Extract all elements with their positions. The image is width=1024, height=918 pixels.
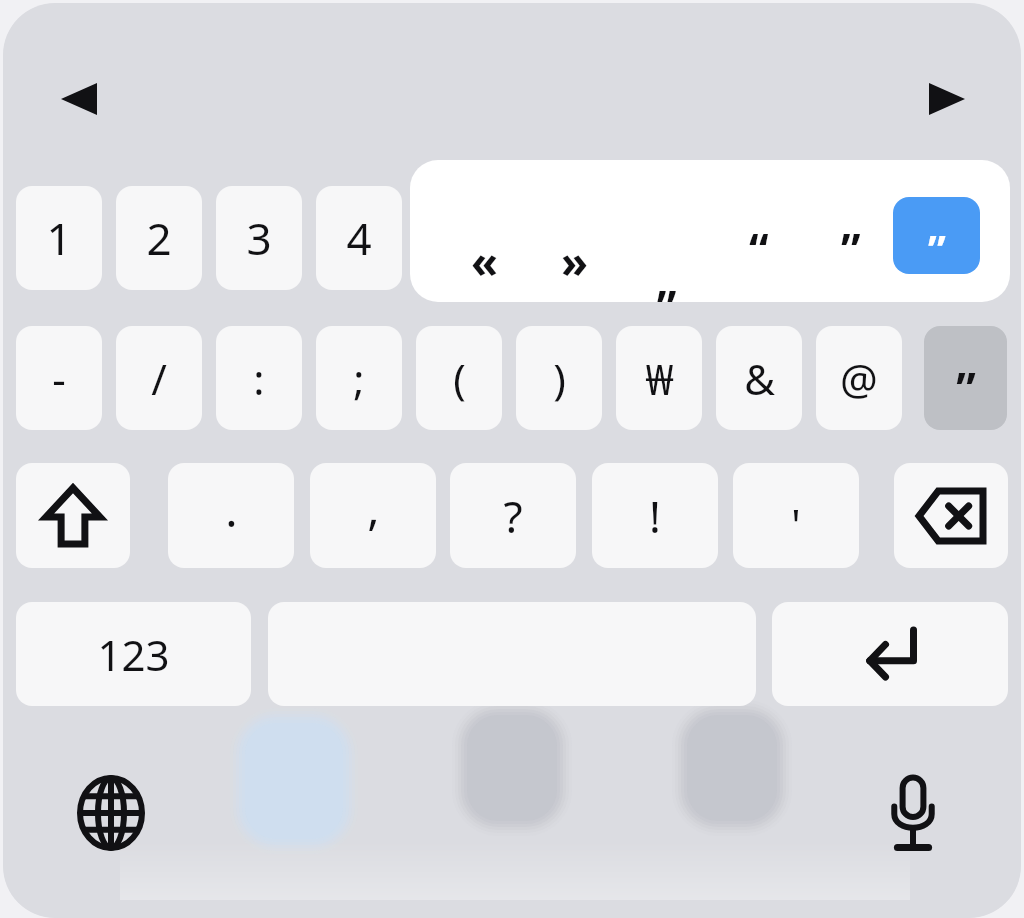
staticText: : bbox=[253, 350, 265, 407]
button[interactable]: ' bbox=[733, 463, 859, 568]
button[interactable]: Change keyboard language bbox=[74, 776, 148, 850]
staticText: 123 bbox=[97, 626, 170, 683]
button[interactable]: ? bbox=[450, 463, 576, 568]
button[interactable]: 4 bbox=[316, 186, 402, 290]
button[interactable]: « bbox=[452, 196, 518, 274]
button[interactable]: ₩ bbox=[616, 326, 702, 430]
button[interactable]: / bbox=[116, 326, 202, 430]
button[interactable]: , bbox=[310, 463, 436, 568]
staticText: ; bbox=[353, 350, 365, 407]
staticText: ₩ bbox=[645, 350, 674, 407]
button[interactable]: Previous bbox=[44, 70, 114, 128]
button[interactable]: ” bbox=[893, 197, 980, 274]
staticText: “ bbox=[749, 219, 769, 279]
staticText: 3 bbox=[246, 208, 272, 268]
button[interactable]: Backspace bbox=[894, 463, 1008, 568]
button[interactable]: Voice input bbox=[876, 772, 950, 856]
button[interactable]: » bbox=[542, 196, 608, 274]
staticText: / bbox=[151, 350, 167, 407]
staticText: ” bbox=[841, 219, 861, 279]
button[interactable]: 123 bbox=[16, 602, 251, 706]
staticText: ( bbox=[453, 350, 466, 407]
staticText: « bbox=[471, 231, 499, 291]
button[interactable]: ” bbox=[818, 196, 884, 274]
staticText: - bbox=[52, 350, 66, 407]
button[interactable]: Next bbox=[912, 70, 982, 128]
staticText: 1 bbox=[46, 208, 72, 268]
staticText: & bbox=[744, 350, 775, 407]
button[interactable]: 3 bbox=[216, 186, 302, 290]
button[interactable]: ) bbox=[516, 326, 602, 430]
staticText: 2 bbox=[146, 208, 172, 268]
button[interactable]: ” bbox=[924, 326, 1007, 430]
button[interactable]: ! bbox=[592, 463, 718, 568]
staticText: ” bbox=[928, 221, 946, 274]
button[interactable]: ( bbox=[416, 326, 502, 430]
button[interactable]: . bbox=[168, 463, 294, 568]
staticText: @ bbox=[840, 350, 878, 407]
staticText: ) bbox=[553, 350, 566, 407]
button[interactable]: ; bbox=[316, 326, 402, 430]
staticText: . bbox=[225, 478, 238, 541]
staticText: 4 bbox=[346, 208, 372, 268]
button[interactable]: - bbox=[16, 326, 102, 430]
button[interactable]: & bbox=[716, 326, 802, 430]
button[interactable]: 2 bbox=[116, 186, 202, 290]
button[interactable]: 1 bbox=[16, 186, 102, 290]
staticText: ! bbox=[649, 486, 661, 546]
button[interactable]: Enter bbox=[772, 602, 1008, 706]
button[interactable]: Shift bbox=[16, 463, 130, 568]
staticText: ” bbox=[956, 358, 976, 418]
staticText: „ bbox=[656, 249, 679, 309]
button[interactable]: “ bbox=[726, 196, 792, 274]
button[interactable]: : bbox=[216, 326, 302, 430]
staticText: ? bbox=[503, 486, 523, 546]
staticText: ' bbox=[791, 494, 801, 554]
staticText: » bbox=[561, 231, 589, 291]
staticText: , bbox=[367, 476, 380, 539]
button[interactable]: @ bbox=[816, 326, 902, 430]
